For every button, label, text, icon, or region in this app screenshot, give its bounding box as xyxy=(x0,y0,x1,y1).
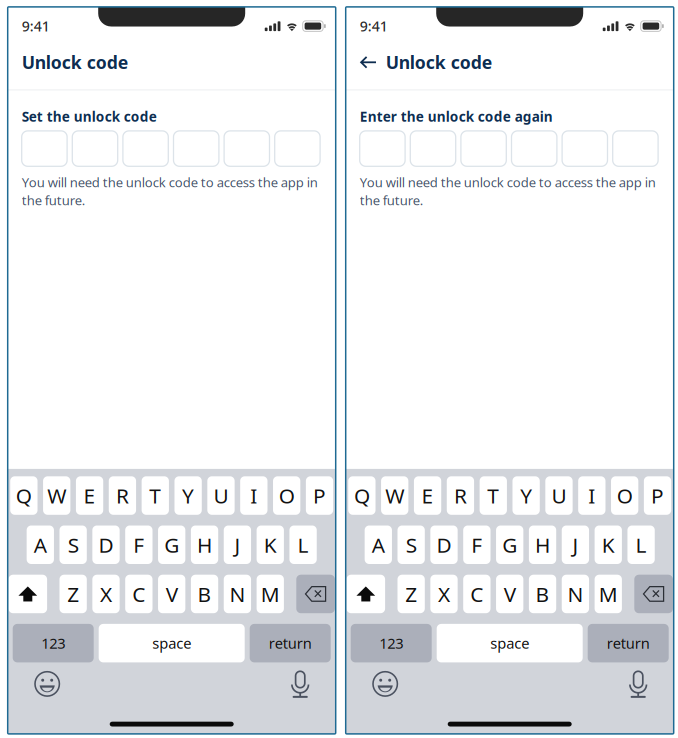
button[interactable]: M xyxy=(257,575,284,613)
staticText: O xyxy=(279,481,295,510)
staticText: Z xyxy=(405,580,417,608)
button[interactable]: X xyxy=(92,575,120,613)
staticText: C xyxy=(470,580,483,608)
staticText: Unlock code xyxy=(22,50,129,74)
button[interactable]: Z xyxy=(59,575,87,613)
staticText: A xyxy=(372,531,385,559)
button[interactable]: Emoji xyxy=(34,671,60,697)
button[interactable]: space xyxy=(437,624,583,662)
staticText: Z xyxy=(67,580,79,608)
button[interactable]: L xyxy=(627,525,655,564)
button[interactable]: L xyxy=(289,525,317,564)
button[interactable]: Y xyxy=(174,476,202,515)
button[interactable]: D xyxy=(92,525,120,564)
staticText: You will need the unlock code to access … xyxy=(360,173,656,209)
button[interactable]: B xyxy=(191,575,218,613)
button[interactable]: S xyxy=(397,525,425,564)
button[interactable]: Delete xyxy=(634,575,673,613)
button[interactable]: return xyxy=(250,624,331,662)
staticText: space xyxy=(490,633,529,653)
staticText: space xyxy=(152,633,191,653)
button[interactable]: Q xyxy=(10,476,37,515)
button[interactable]: P xyxy=(644,476,671,515)
button[interactable]: Z xyxy=(397,575,425,613)
staticText: R xyxy=(454,481,467,510)
button[interactable]: T xyxy=(142,476,169,515)
button[interactable]: A xyxy=(27,525,54,564)
button[interactable]: J xyxy=(562,525,589,564)
button[interactable]: K xyxy=(257,525,284,564)
staticText: V xyxy=(166,580,178,608)
button[interactable]: U xyxy=(545,476,573,515)
button[interactable]: I xyxy=(240,476,267,515)
staticText: return xyxy=(269,633,312,653)
staticText: 9:41 xyxy=(22,16,50,36)
staticText: I xyxy=(250,481,257,510)
button[interactable]: Dictation xyxy=(629,670,647,698)
staticText: 123 xyxy=(379,633,403,653)
button[interactable]: O xyxy=(273,476,300,515)
staticText: X xyxy=(100,580,112,608)
button[interactable]: S xyxy=(59,525,87,564)
staticText: H xyxy=(535,531,550,559)
button[interactable]: Shift xyxy=(8,575,47,613)
button[interactable]: G xyxy=(496,525,523,564)
button[interactable]: N xyxy=(224,575,251,613)
staticText: Set the unlock code xyxy=(22,107,157,126)
button[interactable]: K xyxy=(595,525,622,564)
button[interactable]: Dictation xyxy=(291,670,309,698)
button[interactable]: O xyxy=(611,476,638,515)
button[interactable]: H xyxy=(191,525,218,564)
button[interactable]: M xyxy=(595,575,622,613)
staticText: U xyxy=(551,481,566,510)
button[interactable]: Q xyxy=(348,476,375,515)
staticText: Q xyxy=(16,481,32,510)
staticText: Unlock code xyxy=(386,50,493,74)
button[interactable]: Emoji xyxy=(372,671,398,697)
staticText: G xyxy=(502,531,517,559)
staticText: 9:41 xyxy=(360,16,388,36)
button[interactable]: J xyxy=(224,525,251,564)
staticText: Y xyxy=(182,481,194,510)
button[interactable]: G xyxy=(158,525,185,564)
button[interactable]: F xyxy=(463,525,490,564)
staticText: P xyxy=(651,481,664,510)
staticText: L xyxy=(298,531,309,559)
button[interactable]: V xyxy=(496,575,523,613)
button[interactable]: C xyxy=(125,575,152,613)
staticText: D xyxy=(98,531,113,559)
button[interactable]: B xyxy=(529,575,556,613)
staticText: M xyxy=(599,580,618,608)
staticText: S xyxy=(68,531,79,559)
button[interactable]: I xyxy=(578,476,605,515)
button[interactable]: W xyxy=(381,476,408,515)
staticText: G xyxy=(164,531,179,559)
button[interactable]: D xyxy=(430,525,458,564)
button[interactable]: R xyxy=(447,476,474,515)
button[interactable]: Y xyxy=(512,476,540,515)
button[interactable]: return xyxy=(588,624,669,662)
button[interactable]: 123 xyxy=(351,624,432,662)
button[interactable]: P xyxy=(306,476,333,515)
button[interactable]: R xyxy=(109,476,136,515)
staticText: return xyxy=(607,633,650,653)
button[interactable]: T xyxy=(480,476,507,515)
button[interactable]: A xyxy=(365,525,392,564)
staticText: W xyxy=(385,481,404,510)
button[interactable]: 123 xyxy=(13,624,94,662)
staticText: N xyxy=(567,580,583,608)
button[interactable]: E xyxy=(76,476,103,515)
button[interactable]: Back xyxy=(360,51,378,73)
button[interactable]: U xyxy=(207,476,235,515)
button[interactable]: C xyxy=(463,575,490,613)
button[interactable]: H xyxy=(529,525,556,564)
button[interactable]: N xyxy=(562,575,589,613)
button[interactable]: W xyxy=(43,476,70,515)
button[interactable]: space xyxy=(99,624,245,662)
button[interactable]: Delete xyxy=(296,575,335,613)
button[interactable]: E xyxy=(414,476,441,515)
button[interactable]: X xyxy=(430,575,458,613)
button[interactable]: V xyxy=(158,575,185,613)
button[interactable]: F xyxy=(125,525,152,564)
button[interactable]: Shift xyxy=(346,575,385,613)
